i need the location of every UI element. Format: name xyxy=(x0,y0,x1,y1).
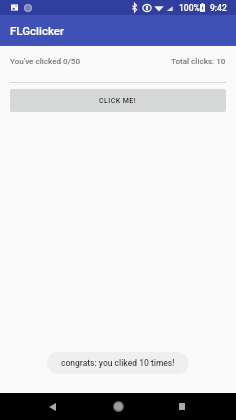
staticText: FLGclicker xyxy=(10,24,64,37)
button[interactable]: Recent apps xyxy=(159,393,204,420)
button[interactable]: CLICK ME! xyxy=(10,89,226,112)
staticText: Total clicks: 10 xyxy=(171,56,226,65)
staticText: 100% xyxy=(179,3,200,13)
staticText: congrats: you cliked 10 times! xyxy=(61,358,175,368)
button[interactable]: Back xyxy=(30,393,75,420)
staticText: You've clicked 0/50 xyxy=(10,56,81,65)
staticText: CLICK ME! xyxy=(99,97,137,105)
staticText: 9:42 xyxy=(210,3,227,13)
button[interactable]: Home xyxy=(96,393,141,420)
